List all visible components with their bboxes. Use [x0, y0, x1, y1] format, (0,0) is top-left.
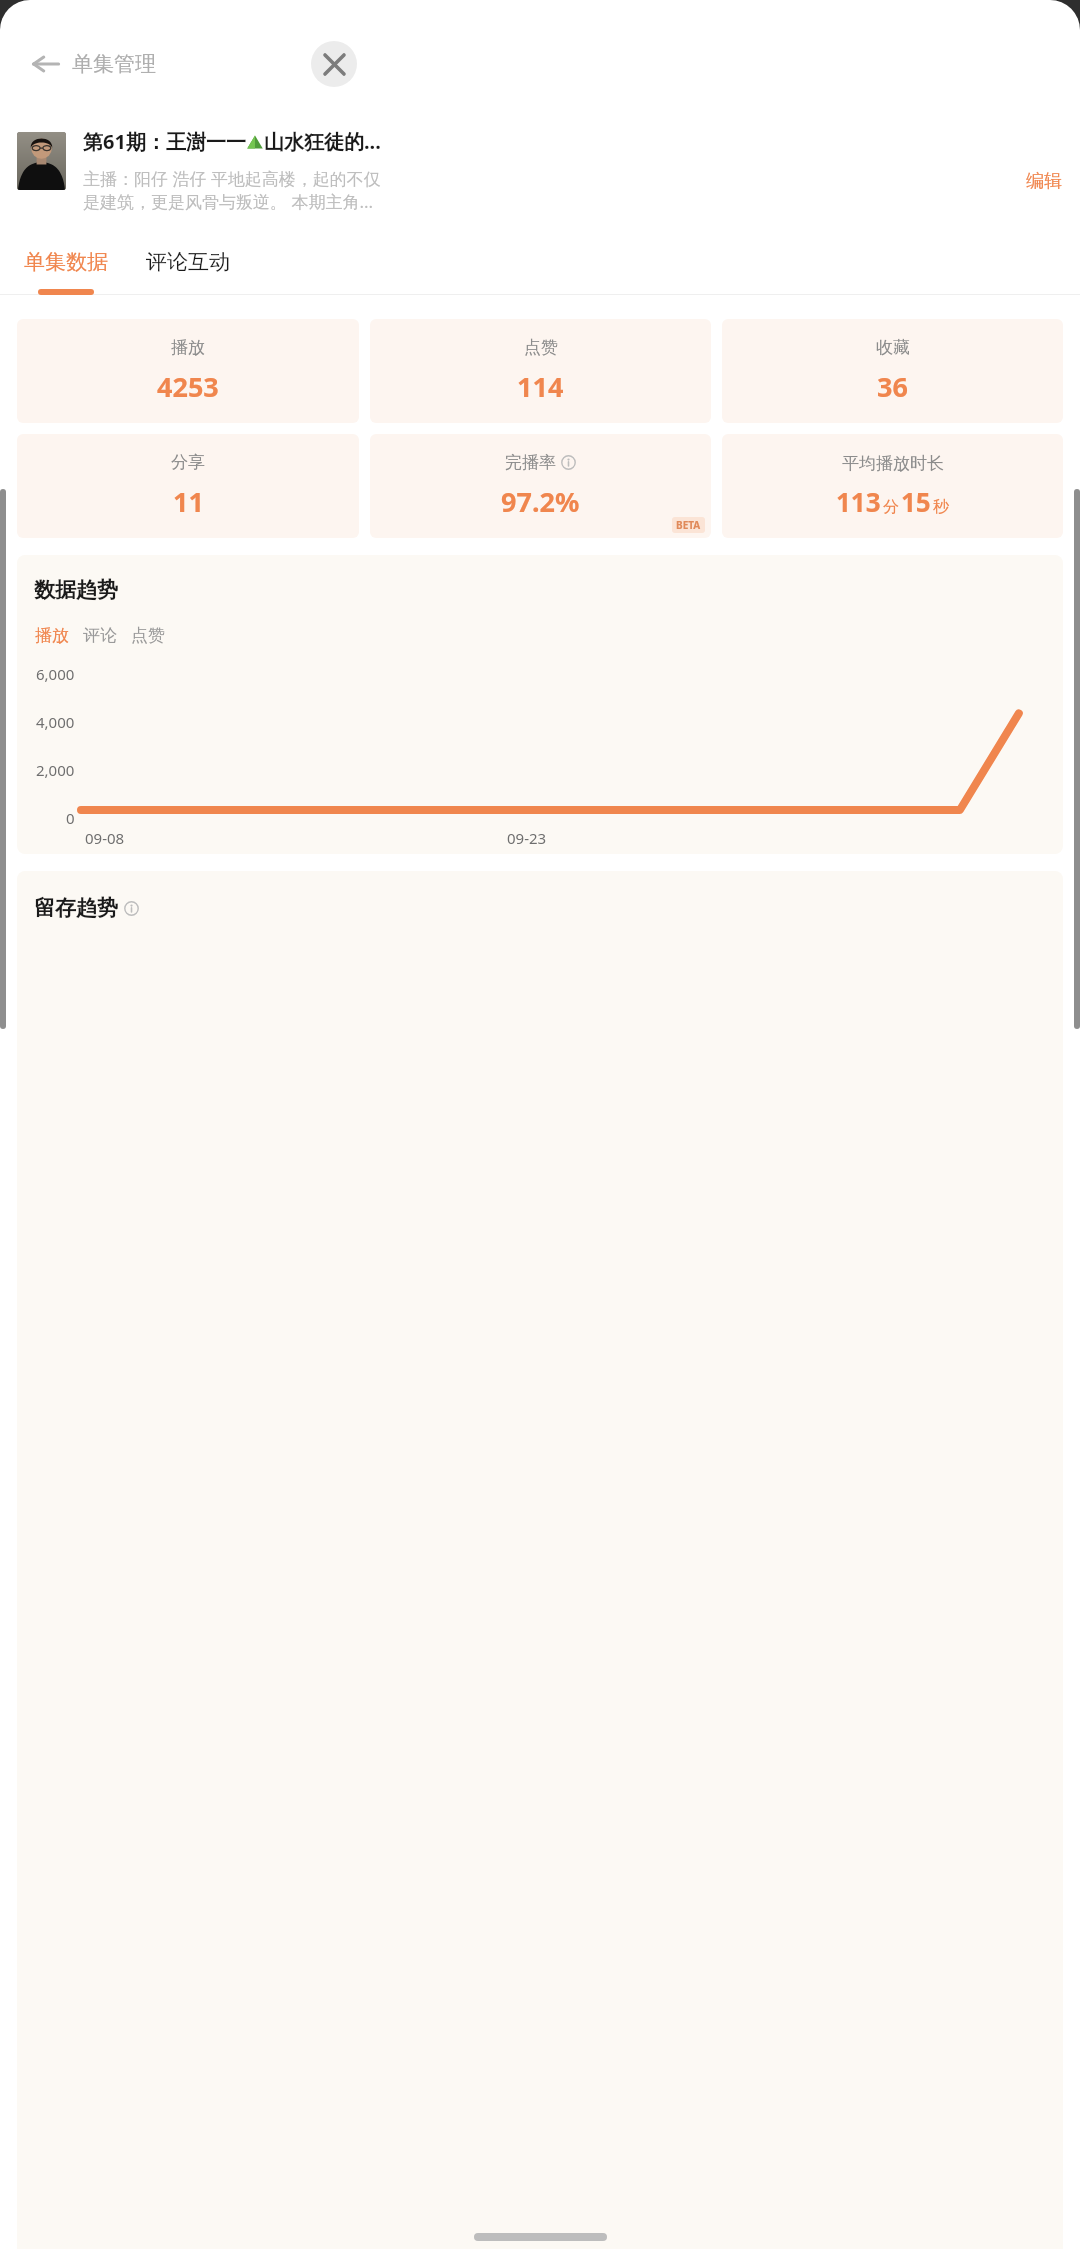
staticText: 11	[173, 483, 204, 520]
staticText: 留存趋势	[34, 895, 118, 921]
staticText: 主播：阳仔 浩仔 平地起高楼，起的不仅	[83, 167, 381, 190]
staticText: 15	[901, 484, 931, 519]
staticText: 评论互动	[146, 249, 230, 275]
staticText: 114	[517, 368, 564, 405]
staticText: 2,000	[36, 760, 75, 780]
staticText: 秒	[933, 497, 949, 517]
button[interactable]: 编辑	[1022, 167, 1066, 196]
button[interactable]: 评论	[81, 623, 119, 648]
staticText: 第61期：王澍一一	[83, 128, 246, 155]
staticText: 36	[877, 368, 908, 405]
button[interactable]: 分享	[17, 434, 359, 538]
button[interactable]: 单集管理	[26, 44, 162, 84]
staticText: 收藏	[876, 337, 910, 358]
staticText: 4253	[157, 368, 219, 405]
button[interactable]: 单集数据	[10, 249, 122, 295]
staticText: 完播率	[505, 452, 556, 473]
button[interactable]: 点赞	[370, 319, 711, 423]
button[interactable]: 关闭	[311, 41, 357, 87]
staticText: 单集数据	[24, 249, 108, 275]
staticText: 0	[66, 808, 75, 828]
staticText: 4,000	[36, 712, 75, 732]
button[interactable]: 播放	[17, 319, 359, 423]
staticText: 6,000	[36, 664, 75, 684]
staticText: 是建筑，更是风骨与叛逆。 本期主角...	[83, 190, 374, 213]
staticText: 113	[836, 484, 881, 519]
staticText: 分	[883, 497, 899, 517]
staticText: 山水狂徒的...	[264, 128, 381, 155]
button[interactable]: 收藏	[722, 319, 1063, 423]
staticText: 09-23	[507, 828, 547, 848]
button[interactable]: 第61期：王澍一一	[0, 128, 1080, 213]
staticText: 平均播放时长	[842, 453, 944, 474]
button[interactable]: 评论互动	[132, 249, 244, 295]
staticText: 数据趋势	[34, 577, 118, 603]
staticText: 点赞	[131, 625, 165, 646]
staticText: 97.2%	[501, 483, 580, 520]
button[interactable]: 完播率	[370, 434, 711, 538]
staticText: 播放	[171, 337, 205, 358]
staticText: 单集管理	[72, 51, 156, 77]
button[interactable]: 平均播放时长	[722, 434, 1063, 538]
staticText: 播放	[35, 625, 69, 646]
button[interactable]: 播放	[33, 623, 71, 648]
button[interactable]: 点赞	[129, 623, 167, 648]
staticText: 点赞	[524, 337, 558, 358]
staticText: 分享	[171, 452, 205, 473]
staticText: 09-08	[85, 828, 125, 848]
button[interactable]: 留存趋势	[17, 871, 1063, 2249]
staticText: 编辑	[1026, 170, 1062, 193]
staticText: BETA	[676, 518, 701, 532]
staticText: 评论	[83, 625, 117, 646]
